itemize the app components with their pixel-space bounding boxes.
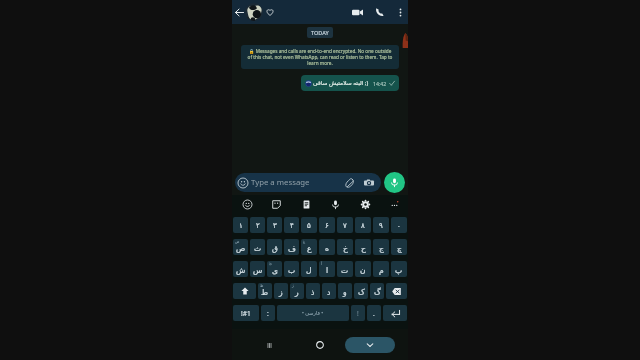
staticText: ش [236,266,246,275]
button[interactable]: ۰ [391,217,407,233]
button[interactable]: ق [267,239,282,255]
button[interactable]: پ [391,261,407,277]
button[interactable]: ۷ [337,217,353,233]
button[interactable]: س [250,261,265,277]
button[interactable]: ذ [306,283,320,299]
button[interactable]: Voice message [384,172,405,193]
button[interactable]: Recents [260,336,278,354]
button[interactable]: ص [233,239,248,255]
button[interactable]: Exclamation [351,305,365,321]
staticText: TODAY [311,29,329,36]
button[interactable]: البته سلامتیش ساقی ;) [301,75,399,91]
staticText: ق [272,244,278,253]
staticText: م [379,266,384,275]
staticText: ژ [292,284,294,288]
staticText: ۹ [379,222,383,230]
staticText: و [343,288,347,297]
staticText: ۴ [290,222,294,230]
button[interactable]: ۸ [355,217,371,233]
button[interactable]: ل [301,261,317,277]
button[interactable]: ۲ [250,217,265,233]
staticText: ۶ [325,222,329,230]
button[interactable]: : [261,305,275,321]
button[interactable]: Stickers [269,197,284,212]
button[interactable]: Enter [383,305,407,321]
button[interactable]: Shift [233,283,256,299]
button[interactable]: د [322,283,336,299]
staticText: گ [374,288,381,297]
staticText: البته سلامتیش ساقی ;) [313,79,369,87]
button[interactable]: ر [290,283,304,299]
button[interactable]: Home [311,336,329,354]
button[interactable]: گ [370,283,384,299]
staticText: ذ [311,288,315,297]
staticText: ب [288,266,296,275]
staticText: ی [272,266,278,275]
button[interactable]: ز [274,283,288,299]
button[interactable]: Space [277,305,349,321]
staticText: ۷ [343,222,347,230]
staticText: ن [360,266,366,275]
button[interactable]: ۳ [267,217,282,233]
button[interactable]: ت [337,261,353,277]
button[interactable]: ج [373,239,389,255]
button[interactable]: Clipboard [299,197,314,212]
button[interactable]: 🔒 Messages and calls are end-to-end encr… [241,45,399,69]
button[interactable]: Symbols [233,305,259,321]
button[interactable]: چ [391,239,407,255]
button[interactable]: ث [250,239,265,255]
button[interactable]: Backspace [386,283,407,299]
button[interactable]: Profile photo [245,3,263,21]
staticText: ! [357,309,359,318]
button[interactable]: ح [355,239,371,255]
staticText: ل [306,266,312,275]
staticText: ۰ [397,222,401,230]
button[interactable]: ک [354,283,368,299]
staticText: ۵ [307,222,311,230]
button[interactable]: Settings [358,197,373,212]
staticText: 🔒 Messages and calls are end-to-end encr… [243,48,397,66]
button[interactable]: Type a message [235,173,381,192]
button[interactable]: ۵ [301,217,317,233]
staticText: ک [358,288,365,297]
button[interactable]: Voice input [328,197,343,212]
button[interactable]: ط [258,283,272,299]
button[interactable]: Emoji [240,197,255,212]
button[interactable]: Hide keyboard [345,337,395,353]
staticText: 14:42 [373,80,387,87]
staticText: ۱ [239,222,243,230]
button[interactable]: ا [319,261,335,277]
staticText: ف [288,244,296,253]
button[interactable]: ۱ [233,217,248,233]
button[interactable]: و [338,283,352,299]
button[interactable]: Voice call [372,4,388,20]
staticText: : [267,309,269,318]
button[interactable]: ۴ [284,217,299,233]
button[interactable]: Favorite [265,7,275,17]
button[interactable]: ۶ [319,217,335,233]
button[interactable]: ع [301,239,317,255]
button[interactable]: ن [355,261,371,277]
button[interactable]: ش [233,261,248,277]
staticText: ئ [269,262,272,266]
staticText: س [253,266,263,275]
staticText: ض [235,240,240,244]
button[interactable]: Video call [349,4,365,20]
button[interactable]: ه [319,239,335,255]
button[interactable]: More options [394,6,406,18]
button[interactable]: TODAY [307,27,333,38]
button[interactable]: ف [284,239,299,255]
staticText: پ [395,266,403,275]
staticText: آ [321,262,322,266]
button[interactable]: Period [367,305,381,321]
button[interactable]: ب [284,261,299,277]
staticText: ز [279,288,283,297]
button[interactable]: م [373,261,389,277]
staticText: خ [343,244,348,253]
button[interactable]: ی [267,261,282,277]
button[interactable]: Back [233,6,245,18]
button[interactable]: ۹ [373,217,389,233]
staticText: د [327,288,331,297]
button[interactable]: خ [337,239,353,255]
button[interactable]: More [387,197,402,212]
